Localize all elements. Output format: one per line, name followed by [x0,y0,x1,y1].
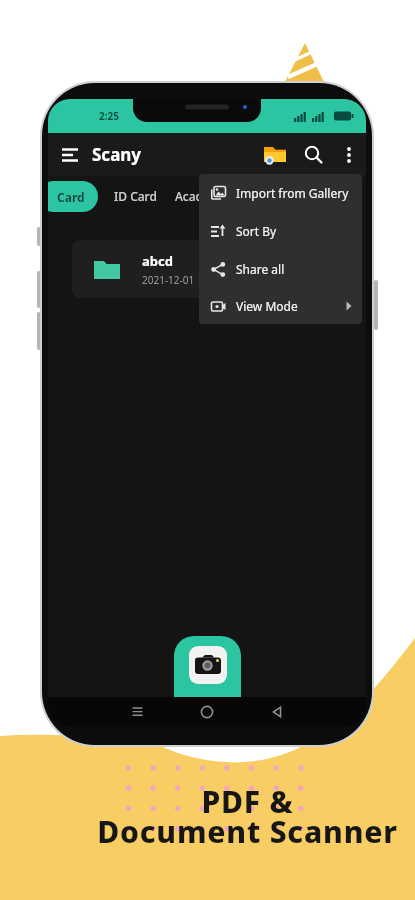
staticText: 2:25 [99,109,119,123]
staticText: abcd [142,252,173,270]
button[interactable] [256,133,296,176]
staticText: Document Scanner [40,811,415,852]
button[interactable] [332,133,366,176]
button[interactable]: View Mode [199,288,362,324]
button[interactable]: ID Card [114,188,157,204]
button[interactable] [48,133,92,176]
staticText: View Mode [236,298,298,314]
staticText: Card [57,189,85,205]
button[interactable]: Share all [199,250,362,288]
staticText: Import from Gallery [236,185,349,201]
button[interactable] [296,133,332,176]
staticText: 2021-12-01 [142,273,195,287]
button[interactable]: abcd [72,240,350,298]
staticText: Sort By [236,223,277,239]
staticText: PDF & [40,781,415,822]
staticText: Scany [92,143,142,166]
staticText: Share all [236,261,285,277]
button[interactable]: Academic [175,188,231,204]
staticText: ID Card [114,188,157,204]
button[interactable]: Card [48,181,98,212]
staticText: Academic [175,188,231,204]
button[interactable] [174,636,241,697]
button[interactable]: Sort By [199,212,362,250]
button[interactable]: Import from Gallery [199,174,362,212]
